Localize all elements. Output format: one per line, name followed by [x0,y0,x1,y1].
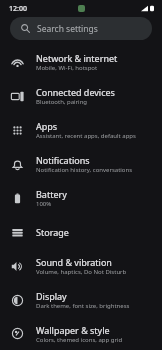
button[interactable]: Network & internet [0,45,162,79]
button[interactable]: Connected devices [0,79,162,113]
button[interactable]: Sound & vibration [0,249,162,283]
staticText: Connected devices [36,86,115,98]
staticText: Notification history, conversations [36,166,133,174]
other: Search [21,24,30,33]
staticText: Bluetooth, pairing [36,98,88,106]
staticText: Display [36,290,67,302]
staticText: Network & internet [36,52,118,64]
staticText: Storage [36,226,69,238]
staticText: Apps [36,120,58,132]
staticText: Search settings [37,23,98,35]
staticText: Wallpaper & style [36,324,110,336]
staticText: 100% [36,200,52,208]
button[interactable]: Display [0,283,162,317]
staticText: Battery [36,188,67,200]
button[interactable]: Search [10,17,152,40]
button[interactable]: Wallpaper & style [0,317,162,350]
button[interactable]: Apps [0,113,162,147]
staticText: Volume, haptics, Do Not Disturb [36,268,127,276]
staticText: Notifications [36,154,90,166]
staticText: Sound & vibration [36,256,112,268]
button[interactable]: Notifications [0,147,162,181]
staticText: 12:00 [9,4,27,14]
staticText: Dark theme, font size, brightness [36,302,130,310]
staticText: Assistant, recent apps, default apps [36,132,136,140]
staticText: Mobile, Wi-Fi, hotspot [36,64,98,72]
button[interactable]: Battery [0,181,162,215]
button[interactable]: Storage [0,215,162,249]
staticText: Colors, themed icons, app grid [36,336,123,344]
